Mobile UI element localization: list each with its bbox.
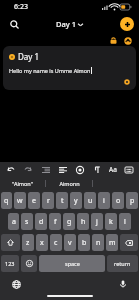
staticText: Day 1 [18, 51, 40, 62]
staticText: Day 1 [56, 19, 76, 29]
button[interactable]: Indent [40, 164, 51, 175]
staticText: n [96, 238, 101, 248]
staticText: t [61, 196, 64, 206]
button[interactable]: p [126, 192, 138, 209]
button[interactable]: b [78, 234, 90, 251]
button[interactable]: Search [5, 15, 23, 33]
staticText: p [130, 196, 135, 206]
button[interactable]: Lock [108, 35, 119, 46]
staticText: a [12, 217, 16, 227]
button[interactable]: Paragraph [91, 164, 102, 175]
button[interactable]: Checklist [74, 164, 85, 175]
staticText: s [25, 217, 29, 227]
staticText: d [39, 217, 44, 227]
staticText: return [114, 260, 131, 267]
button[interactable]: Profile [122, 35, 133, 46]
button[interactable]: j [91, 213, 103, 230]
button[interactable]: y [70, 192, 82, 209]
staticText: f [54, 217, 57, 227]
button[interactable]: return [107, 255, 138, 272]
staticText: "Aimon" [12, 180, 33, 187]
button[interactable]: 123 [1, 255, 19, 272]
button[interactable]: Emoji [21, 255, 37, 272]
button[interactable]: w [14, 192, 26, 209]
button[interactable]: Aa [109, 165, 117, 174]
button[interactable]: g [63, 213, 75, 230]
staticText: space [65, 260, 80, 267]
button[interactable]: Day 1 [3, 46, 136, 90]
button[interactable]: h [77, 213, 89, 230]
button[interactable]: c [50, 234, 62, 251]
button[interactable]: Backspace [120, 234, 138, 251]
staticText: c [54, 238, 58, 248]
staticText: h [81, 217, 86, 227]
button[interactable]: Align [57, 164, 68, 175]
staticText: Hello my name is Umme Aimon [9, 67, 91, 74]
button[interactable]: Entry options [122, 77, 131, 86]
button[interactable]: n [92, 234, 104, 251]
staticText: u [88, 196, 93, 206]
button[interactable]: Shift [1, 234, 20, 251]
staticText: 6:23 [14, 2, 28, 12]
staticText: i [103, 196, 105, 206]
staticText: w [17, 196, 23, 206]
button[interactable]: Hide keyboard [123, 164, 134, 175]
button[interactable]: Redo [22, 164, 33, 175]
button[interactable]: z [22, 234, 34, 251]
staticText: l [124, 217, 126, 227]
button[interactable]: t [56, 192, 68, 209]
staticText: b [82, 238, 87, 248]
button[interactable]: Change language [10, 278, 22, 290]
staticText: e [32, 196, 36, 206]
staticText: 123 [5, 260, 15, 267]
button[interactable]: k [105, 213, 117, 230]
staticText: r [47, 196, 50, 206]
staticText: v [68, 238, 72, 248]
button[interactable]: r [42, 192, 54, 209]
button[interactable]: x [36, 234, 48, 251]
button[interactable]: u [84, 192, 96, 209]
button[interactable]: Aimonn [46, 177, 92, 190]
button[interactable]: s [21, 213, 33, 230]
button[interactable]: d [35, 213, 47, 230]
staticText: y [74, 196, 78, 206]
staticText: Aa [109, 165, 117, 174]
button[interactable]: v [64, 234, 76, 251]
staticText: j [96, 217, 98, 227]
staticText: x [40, 238, 44, 248]
staticText: g [67, 217, 72, 227]
button[interactable]: q [1, 192, 12, 209]
button[interactable]: m [106, 234, 118, 251]
button[interactable]: space [39, 255, 105, 272]
button[interactable]: i [98, 192, 110, 209]
staticText: q [4, 196, 9, 206]
staticText: m [109, 238, 116, 248]
button[interactable]: f [49, 213, 61, 230]
button[interactable]: a [8, 213, 19, 230]
staticText: k [109, 217, 113, 227]
button[interactable]: o [112, 192, 124, 209]
button[interactable]: Day 1 [56, 19, 83, 29]
button[interactable]: Add entry [120, 17, 134, 31]
button[interactable]: Voice input [117, 278, 129, 290]
button[interactable]: Undo [5, 164, 16, 175]
button[interactable]: e [28, 192, 40, 209]
button[interactable]: l [119, 213, 131, 230]
staticText: o [116, 196, 121, 206]
staticText: z [26, 238, 30, 248]
staticText: Aimonn [59, 180, 80, 187]
button[interactable]: "Aimon" [0, 177, 45, 190]
